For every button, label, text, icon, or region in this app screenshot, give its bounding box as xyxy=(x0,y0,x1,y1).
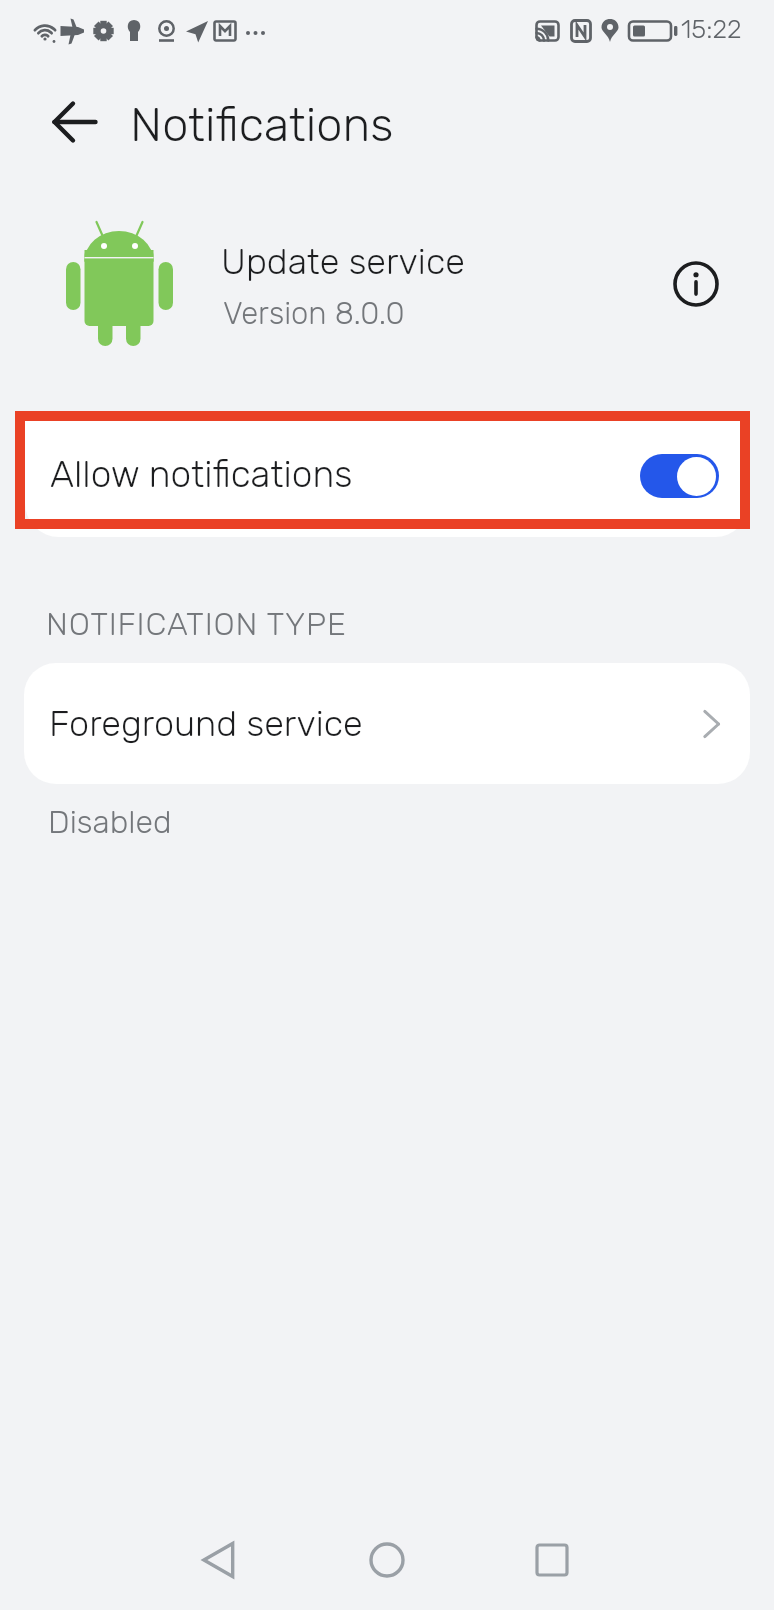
button[interactable]: Info xyxy=(664,252,728,316)
staticText: Disabled xyxy=(48,803,172,841)
staticText: Update service xyxy=(221,240,465,283)
button[interactable]: Home xyxy=(303,1510,471,1610)
button[interactable]: Back xyxy=(135,1510,303,1610)
staticText: NOTIFICATION TYPE xyxy=(46,605,347,643)
button[interactable]: Allow notifications xyxy=(25,418,749,537)
staticText: Version 8.0.0 xyxy=(223,295,405,332)
staticText: Allow notifications xyxy=(50,452,353,496)
staticText: Foreground service xyxy=(49,702,363,745)
button[interactable]: Recent apps xyxy=(471,1510,639,1610)
button[interactable]: Foreground service xyxy=(24,663,750,784)
button[interactable]: Back xyxy=(34,86,116,158)
staticText: Notifications xyxy=(130,97,394,153)
staticText: 15:22 xyxy=(681,14,742,45)
